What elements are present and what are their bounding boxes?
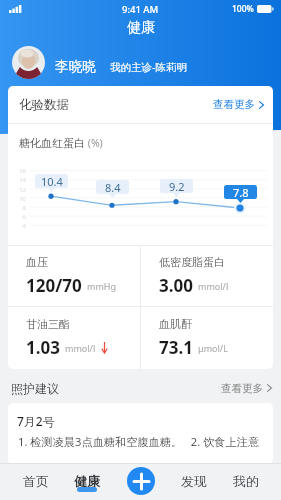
staticText: 李晓晓 xyxy=(55,58,96,75)
staticText: (%) xyxy=(85,136,103,150)
staticText: 10 xyxy=(14,195,26,203)
staticText: 8.4 xyxy=(105,180,121,194)
staticText: 1. 检测凌晨3点血糖和空腹血糖。 2. 饮食上注意 xyxy=(18,434,273,449)
staticText: 我的主诊-陈莉明 xyxy=(110,60,187,74)
staticText: 8 xyxy=(14,204,26,212)
staticText: 糖化血红蛋白 xyxy=(19,136,85,150)
staticText: 我的 xyxy=(233,473,259,489)
staticText: 甘油三酯 xyxy=(26,317,70,331)
button[interactable]: 化验数据 xyxy=(8,86,273,123)
staticText: 发现 xyxy=(181,473,207,489)
staticText: 14 xyxy=(14,176,26,184)
staticText: 3.00 xyxy=(159,274,193,297)
staticText: 120/70 xyxy=(26,274,82,297)
staticText: 1.03 xyxy=(26,336,60,359)
staticText: 血肌酐 xyxy=(159,317,192,331)
staticText: 16 xyxy=(14,167,26,175)
staticText: 73.1 xyxy=(159,336,193,359)
staticText: 100% xyxy=(232,3,254,15)
staticText: 照护建议 xyxy=(11,381,59,396)
button[interactable]: 发现 xyxy=(172,463,215,500)
staticText: 7月2号 xyxy=(17,413,55,429)
staticText: mmol/l xyxy=(198,280,229,292)
button[interactable]: 首页 xyxy=(14,463,57,500)
button[interactable]: 低密度脂蛋白 xyxy=(141,246,273,306)
staticText: 9:41 AM xyxy=(122,3,159,16)
staticText: 6 xyxy=(14,213,26,221)
button[interactable]: 甘油三酯 xyxy=(8,307,140,369)
staticText: 健康 xyxy=(127,19,155,37)
button[interactable]: Add xyxy=(127,467,155,495)
staticText: 健康 xyxy=(74,473,100,489)
staticText: 7.8 xyxy=(233,185,249,199)
staticText: 查看更多 xyxy=(213,98,255,111)
staticText: 9.2 xyxy=(169,179,185,193)
staticText: 查看更多 xyxy=(221,382,263,395)
button[interactable]: 血压 xyxy=(8,246,140,306)
staticText: μmol/L xyxy=(198,342,228,354)
button[interactable]: 我的 xyxy=(224,463,267,500)
staticText: 血压 xyxy=(26,255,48,269)
staticText: 首页 xyxy=(23,473,49,489)
staticText: mmHg xyxy=(87,280,117,292)
staticText: 化验数据 xyxy=(19,97,69,113)
staticText: 12 xyxy=(14,186,26,194)
button[interactable]: 健康 xyxy=(65,463,108,500)
staticText: mmol/l xyxy=(65,342,96,354)
button[interactable]: 血肌酐 xyxy=(141,307,273,369)
button[interactable]: 照护建议 xyxy=(0,373,281,403)
staticText: 10.4 xyxy=(41,174,63,188)
staticText: 4 xyxy=(14,222,26,230)
staticText: 低密度脂蛋白 xyxy=(159,255,225,269)
button[interactable]: 李晓晓 xyxy=(0,44,281,86)
